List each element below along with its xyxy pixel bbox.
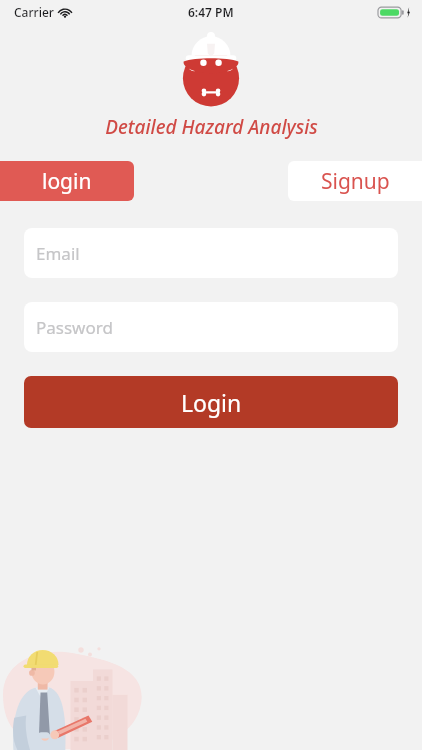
staticText: 6:47 PM <box>188 4 234 20</box>
staticText: Signup <box>321 167 390 196</box>
button[interactable]: Password <box>24 302 398 352</box>
button[interactable]: login <box>0 161 134 201</box>
staticText: Email <box>36 242 80 265</box>
staticText: Carrier <box>14 4 54 20</box>
button[interactable]: Signup <box>288 161 422 201</box>
button[interactable]: Login <box>24 376 398 428</box>
staticText: Login <box>181 387 242 418</box>
staticText: login <box>42 167 92 196</box>
staticText: Password <box>36 316 113 339</box>
button[interactable]: Email <box>24 228 398 278</box>
staticText: Detailed Hazard Analysis <box>105 114 318 140</box>
